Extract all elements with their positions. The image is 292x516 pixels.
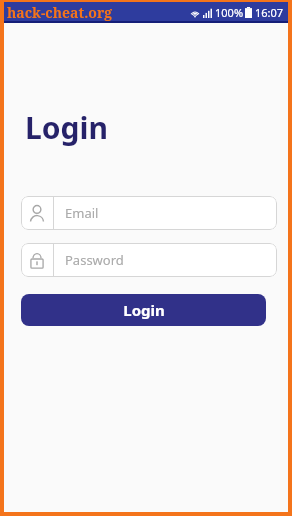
button[interactable]: Password — [21, 243, 277, 277]
staticText: hack-cheat.org — [7, 3, 113, 22]
staticText: Password — [65, 251, 124, 269]
other: Wi-Fi — [190, 8, 200, 18]
staticText: Email — [65, 204, 99, 222]
other: User — [28, 204, 46, 223]
button[interactable]: Login — [21, 294, 266, 326]
staticText: 16:07 — [255, 5, 284, 20]
button[interactable]: User — [21, 196, 277, 230]
staticText: 100% — [215, 5, 244, 20]
other: Password — [29, 251, 45, 270]
other: Signal strength — [203, 8, 213, 18]
staticText: Login — [123, 300, 165, 320]
staticText: Login — [25, 107, 108, 148]
other: Battery full — [245, 7, 252, 18]
